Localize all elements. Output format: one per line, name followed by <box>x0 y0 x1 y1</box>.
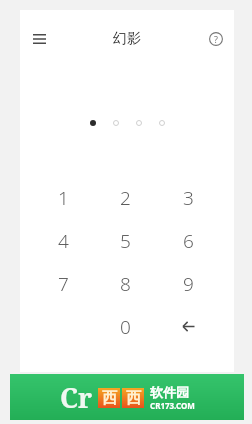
button[interactable]: Backspace <box>157 305 220 348</box>
staticText: 5 <box>120 228 131 254</box>
button[interactable]: 6 <box>157 219 220 262</box>
staticText: 9 <box>183 271 194 297</box>
button[interactable]: 0 <box>94 305 157 348</box>
staticText: 2 <box>120 185 131 211</box>
button[interactable]: 9 <box>157 262 220 305</box>
button[interactable]: 8 <box>94 262 157 305</box>
staticText: 6 <box>183 228 194 254</box>
button[interactable]: Help <box>200 23 232 55</box>
staticText: 西 <box>126 389 141 408</box>
staticText: 0 <box>120 314 131 340</box>
staticText: 8 <box>120 271 131 297</box>
staticText: 幻影 <box>113 30 141 48</box>
staticText: 4 <box>58 228 69 254</box>
staticText: Cr <box>60 379 93 416</box>
staticText: 3 <box>183 185 194 211</box>
button[interactable]: Menu <box>22 22 56 56</box>
button[interactable]: 2 <box>94 176 157 219</box>
button[interactable]: 4 <box>32 219 94 262</box>
staticText: CR173.COM <box>150 400 195 411</box>
staticText: 1 <box>58 185 69 211</box>
button[interactable]: 7 <box>32 262 94 305</box>
staticText: 软件园 <box>150 384 189 400</box>
staticText: 西 <box>102 389 117 408</box>
button[interactable]: 3 <box>157 176 220 219</box>
staticText: 7 <box>58 271 69 297</box>
staticText: ? <box>214 33 218 45</box>
button[interactable]: 5 <box>94 219 157 262</box>
button[interactable]: 1 <box>32 176 94 219</box>
